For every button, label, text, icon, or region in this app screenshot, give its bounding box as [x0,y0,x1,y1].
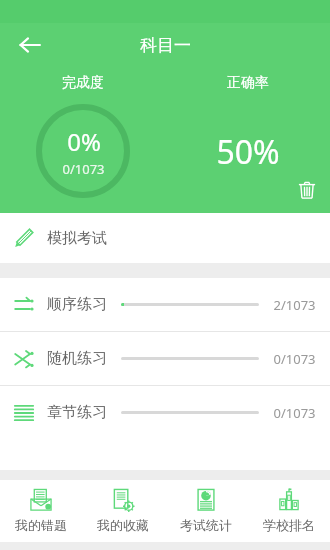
staticText: 0/1073 [62,160,105,178]
button[interactable]: 模拟考试 [0,213,330,263]
staticText: 完成度 [62,74,104,92]
staticText: 正确率 [227,74,269,92]
staticText: 2/1073 [273,296,316,314]
button[interactable]: 章节练习 [0,386,330,439]
staticText: 0/1073 [273,350,316,368]
staticText: 学校排名 [263,517,315,533]
button[interactable]: Back [8,23,52,67]
button[interactable]: Delete [290,173,324,207]
button[interactable]: 考试统计 [164,480,247,542]
button[interactable]: 我的错题 [0,480,82,542]
staticText: 顺序练习 [47,295,107,314]
staticText: 0% [67,125,101,158]
button[interactable]: 我的收藏 [82,480,164,542]
staticText: 科目一 [140,35,191,56]
staticText: 模拟考试 [47,229,107,248]
staticText: 50% [216,130,280,174]
staticText: 0/1073 [273,404,316,422]
staticText: 章节练习 [47,403,107,422]
staticText: 随机练习 [47,349,107,368]
staticText: 我的错题 [15,517,67,533]
staticText: 我的收藏 [97,517,149,533]
staticText: 考试统计 [180,517,232,533]
button[interactable]: 随机练习 [0,332,330,385]
button[interactable]: 顺序练习 [0,278,330,331]
button[interactable]: 学校排名 [247,480,330,542]
